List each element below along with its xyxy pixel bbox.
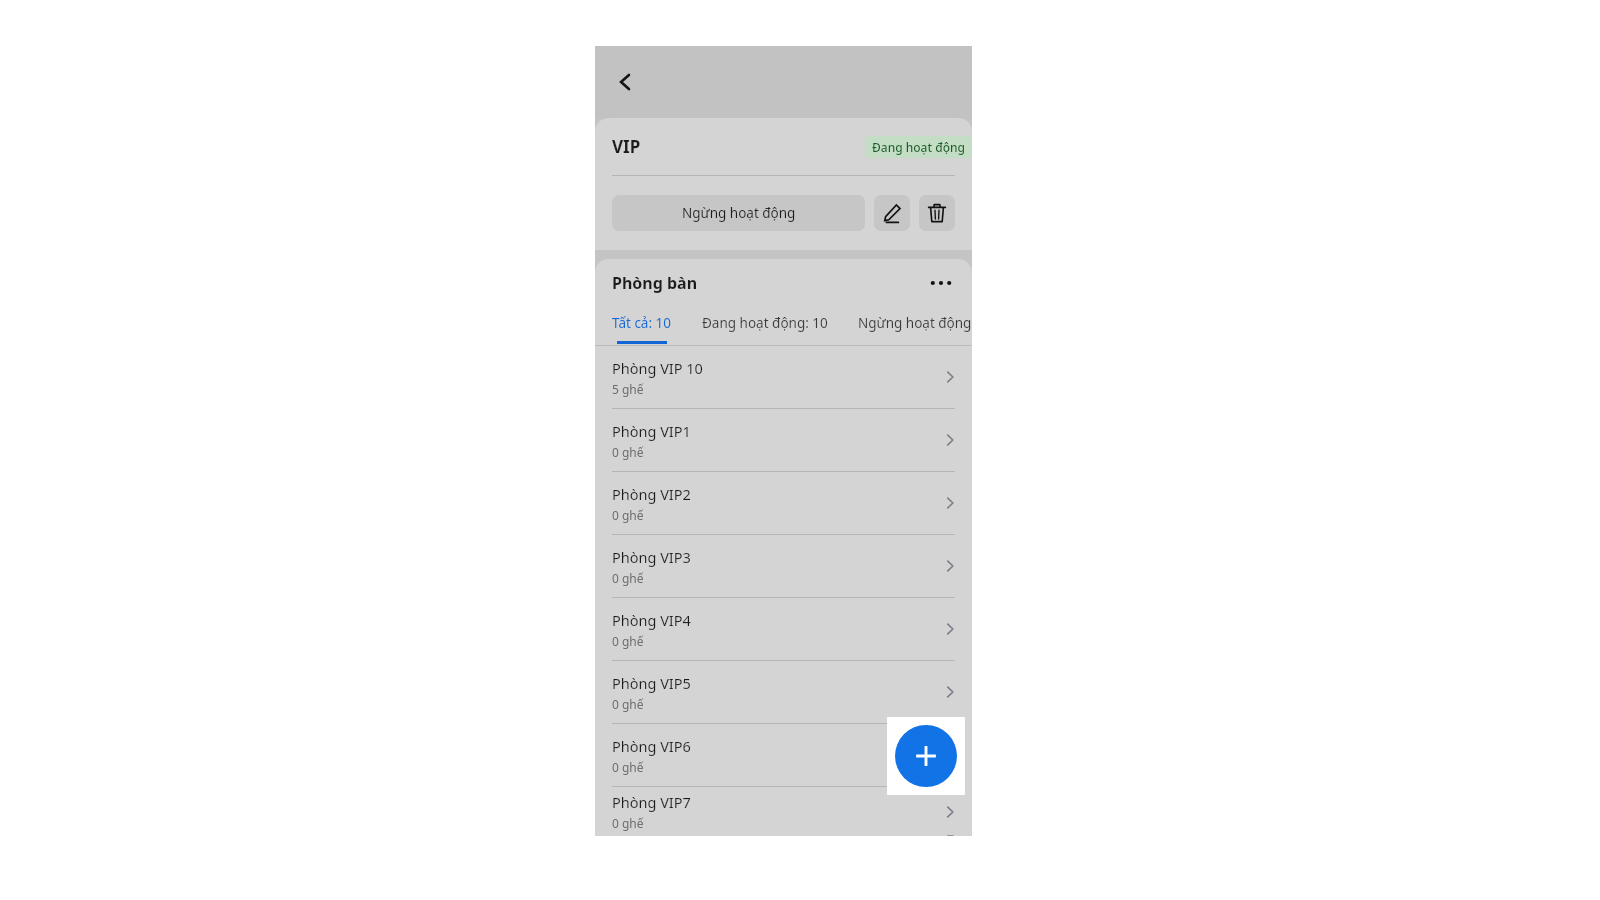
staticText: Phòng VIP4 [612, 610, 691, 630]
staticText: Đang hoạt động [872, 139, 965, 155]
staticText: 5 ghế [612, 381, 644, 397]
button[interactable]: Delete [919, 195, 955, 231]
staticText: Phòng VIP6 [612, 736, 691, 756]
staticText: Ngừng hoạt động: 0 [858, 314, 972, 332]
staticText: 0 ghế [612, 815, 644, 831]
staticText: 0 ghế [612, 507, 644, 523]
button[interactable]: Phòng VIP1 [595, 409, 972, 471]
staticText: 0 ghế [612, 759, 644, 775]
staticText: Phòng VIP 10 [612, 358, 703, 378]
staticText: Phòng VIP7 [612, 792, 691, 812]
button[interactable]: Phòng VIP7 [595, 787, 972, 836]
staticText: Phòng VIP5 [612, 673, 691, 693]
staticText: 0 ghế [612, 570, 644, 586]
staticText: VIP [612, 135, 641, 158]
button[interactable]: Edit [874, 195, 910, 231]
button[interactable]: Tất cả: 10 [612, 307, 672, 344]
staticText: Ngừng hoạt động [682, 204, 796, 222]
button[interactable]: Phòng VIP4 [595, 598, 972, 660]
staticText: Đang hoạt động: 10 [702, 314, 828, 332]
button[interactable]: Ngừng hoạt động [612, 195, 865, 231]
button[interactable]: Phòng VIP3 [595, 535, 972, 597]
staticText: Phòng VIP2 [612, 484, 691, 504]
button[interactable]: Phòng VIP5 [595, 661, 972, 723]
button[interactable]: Phòng VIP2 [595, 472, 972, 534]
button[interactable]: More options [924, 266, 958, 300]
button[interactable]: Đang hoạt động: 10 [702, 307, 828, 341]
button[interactable]: Ngừng hoạt động: 0 [858, 307, 972, 341]
staticText: 0 ghế [612, 696, 644, 712]
button[interactable]: Phòng VIP 10 [595, 346, 972, 408]
staticText: Phòng VIP1 [612, 421, 691, 441]
button[interactable]: Add [895, 725, 957, 787]
staticText: 0 ghế [612, 444, 644, 460]
button[interactable]: Back [603, 60, 647, 104]
staticText: 0 ghế [612, 633, 644, 649]
staticText: Phòng VIP3 [612, 547, 691, 567]
button[interactable]: Phòng VIP6 [595, 724, 972, 786]
staticText: Phòng bàn [612, 272, 698, 294]
staticText: Tất cả: 10 [612, 314, 672, 332]
